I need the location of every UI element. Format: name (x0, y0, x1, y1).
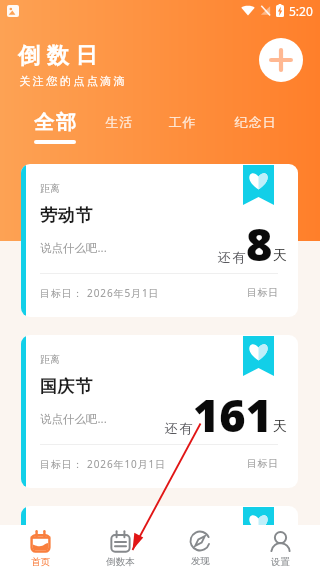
staticText: 距离 (40, 524, 60, 537)
staticText: 天 (273, 418, 287, 436)
staticText: 首页 (31, 556, 50, 568)
button[interactable]: Add countdown (259, 38, 303, 82)
staticText: 国庆节 (40, 376, 93, 397)
staticText: 说点什么吧... (40, 411, 107, 427)
staticText: 工作 (168, 114, 196, 130)
staticText: 还有 (217, 249, 246, 265)
staticText: 还有 (164, 420, 193, 436)
staticText: 目标日 (247, 286, 279, 299)
button[interactable]: 倒数本 (80, 525, 160, 568)
staticText: 纪念日 (234, 114, 276, 130)
button[interactable]: 距离 (21, 335, 298, 488)
staticText: 生日 (40, 547, 76, 568)
staticText: 目标日： 2026年10月1日 (40, 457, 167, 471)
staticText: 关注您的点点滴滴 (18, 74, 126, 88)
staticText: 生活 (105, 114, 133, 130)
button[interactable]: 首页 (0, 525, 80, 568)
button[interactable]: 距离 (21, 506, 298, 568)
staticText: 目标日 (247, 457, 279, 470)
staticText: 劳动节 (40, 205, 93, 226)
staticText: 天 (273, 247, 287, 265)
button[interactable]: 工作 (158, 94, 206, 146)
staticText: 目标日： 2026年5月1日 (40, 286, 160, 300)
staticText: 倒数本 (106, 556, 135, 568)
staticText: 倒数日 (18, 42, 105, 70)
staticText: 说点什么吧... (40, 240, 107, 256)
button[interactable]: 纪念日 (224, 94, 286, 146)
staticText: 215 (193, 555, 273, 568)
staticText: 161 (193, 384, 273, 445)
staticText: 设置 (271, 556, 290, 568)
staticText: 距离 (40, 353, 60, 366)
staticText: 距离 (40, 182, 60, 195)
button[interactable]: 设置 (240, 525, 320, 568)
staticText: 5:20 (289, 3, 313, 19)
staticText: 发现 (191, 555, 210, 567)
button[interactable]: 距离 (21, 164, 298, 317)
button[interactable]: 发现 (160, 525, 240, 568)
staticText: 全部 (33, 110, 77, 135)
staticText: 8 (246, 213, 273, 274)
button[interactable]: 生活 (96, 94, 142, 146)
button[interactable]: 全部 (21, 94, 89, 146)
